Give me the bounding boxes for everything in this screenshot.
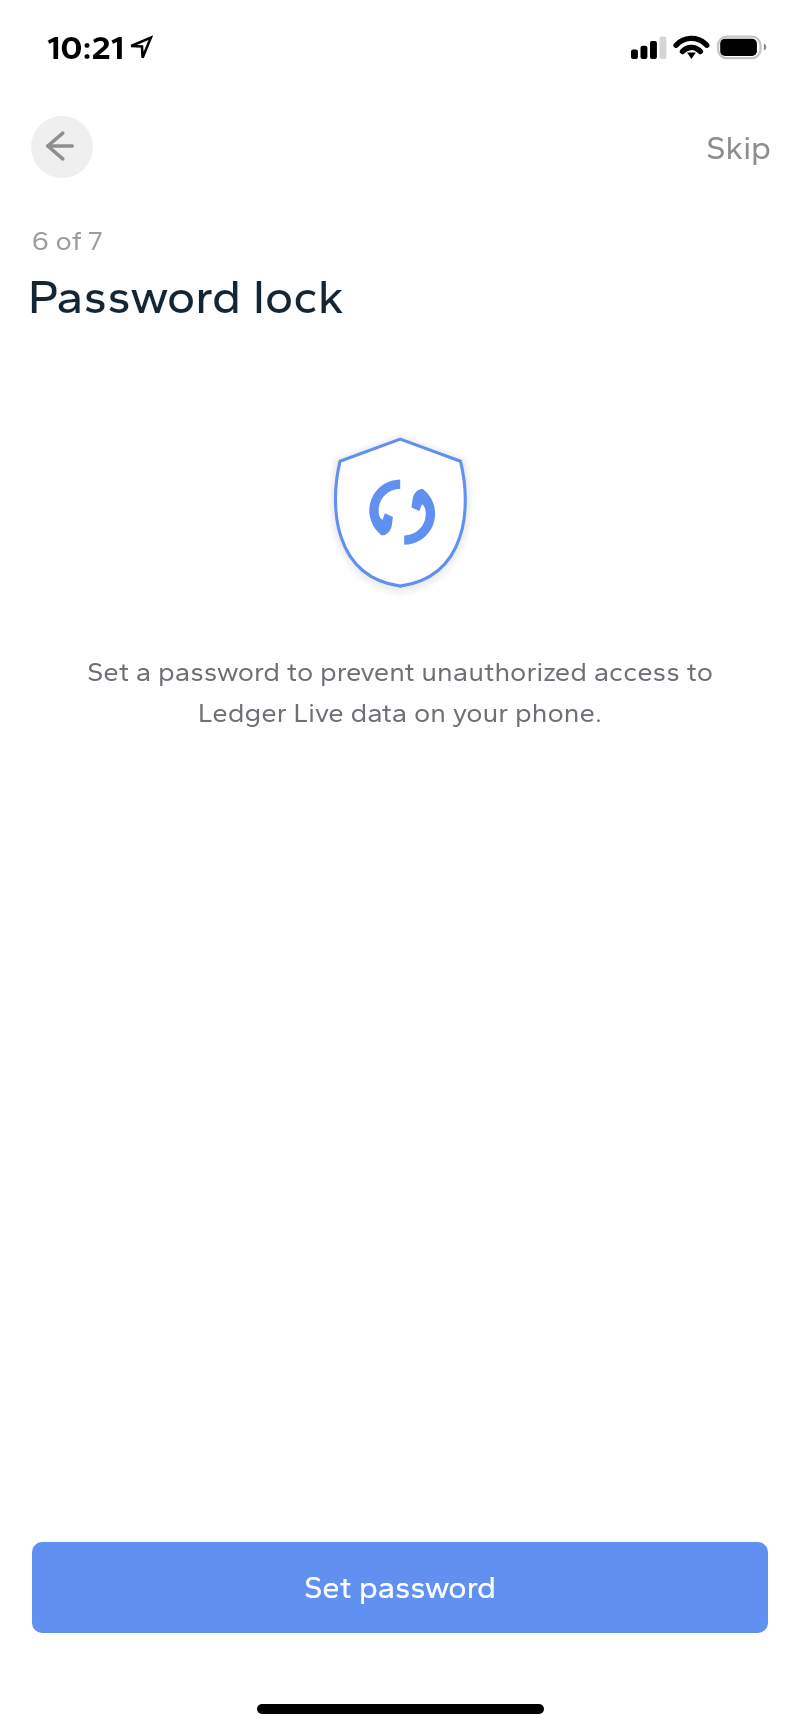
staticText: 6 of 7 (32, 224, 103, 257)
staticText: Skip (706, 128, 772, 168)
button[interactable]: Back (31, 116, 93, 178)
staticText: Password lock (28, 267, 344, 325)
button[interactable]: Skip (686, 122, 800, 174)
button[interactable]: Set password (32, 1542, 768, 1633)
staticText: 10:21 (47, 27, 125, 68)
staticText: Set password (304, 1569, 496, 1606)
staticText: Set a password to prevent unauthorized a… (80, 655, 720, 729)
